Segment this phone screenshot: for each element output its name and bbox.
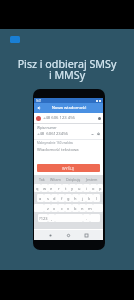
staticText: c [61, 206, 63, 211]
button[interactable]: v [65, 204, 72, 212]
staticText: Nowa wiadomość [42, 105, 96, 111]
staticText: 9:41 [36, 99, 42, 103]
staticText: w [43, 186, 47, 191]
button[interactable]: Remove recipient [98, 117, 101, 120]
button[interactable]: Logo [10, 36, 20, 43]
staticText: b [74, 206, 77, 211]
button[interactable]: Back [49, 234, 52, 237]
staticText: q [36, 186, 39, 191]
staticText: h [74, 196, 77, 201]
button[interactable]: e [48, 184, 55, 192]
button[interactable]: Back [36, 105, 42, 111]
button[interactable]: u [76, 184, 83, 192]
button[interactable]: w [41, 184, 48, 192]
staticText: +48 606 123 456 [43, 115, 76, 121]
staticText: z [47, 206, 49, 211]
button[interactable]: Jestem [86, 177, 98, 182]
button[interactable]: Witam [50, 177, 61, 182]
button[interactable]: . [83, 214, 90, 222]
button[interactable]: Clear [90, 132, 95, 137]
button[interactable]: c [58, 204, 65, 212]
button[interactable]: d [51, 194, 58, 202]
staticText: a [39, 196, 42, 201]
staticText: d [53, 196, 56, 201]
staticText: j [82, 196, 84, 201]
staticText: m [88, 206, 92, 211]
staticText: . [86, 216, 88, 221]
button[interactable]: Contacts [96, 132, 101, 137]
button[interactable]: p [97, 184, 103, 192]
button[interactable]: x [51, 204, 58, 212]
staticText: r [58, 186, 60, 191]
staticText: Wiadomość tekstowa [37, 147, 79, 153]
button[interactable]: h [72, 194, 79, 202]
staticText: Maksymalnie 160 znaków [37, 141, 73, 145]
button[interactable]: t [62, 184, 69, 192]
button[interactable]: z [44, 204, 51, 212]
button[interactable]: q [34, 184, 41, 192]
button[interactable]: y [69, 184, 76, 192]
staticText: x [53, 206, 56, 211]
button[interactable]: , [48, 214, 55, 222]
staticText: l [96, 196, 98, 201]
button[interactable]: s [44, 194, 51, 202]
button[interactable]: Home [67, 234, 70, 237]
staticText: WYŚLIJ [62, 166, 75, 171]
button[interactable]: f [58, 194, 65, 202]
staticText: o [92, 186, 95, 191]
staticText: ?123 [39, 216, 48, 221]
button[interactable]: l [93, 194, 100, 202]
staticText: g [67, 196, 70, 201]
staticText: e [50, 186, 53, 191]
button[interactable]: o [90, 184, 97, 192]
staticText: s [47, 196, 49, 201]
staticText: +48 606123456 [37, 131, 68, 137]
staticText: t [65, 186, 67, 191]
button[interactable]: b [72, 204, 79, 212]
staticText: v [67, 206, 70, 211]
button[interactable]: j [79, 194, 86, 202]
button[interactable]: a [37, 194, 44, 202]
button[interactable]: Recents [85, 234, 88, 237]
button[interactable]: Dziękuję [66, 177, 81, 182]
staticText: f [61, 196, 63, 201]
staticText: y [71, 186, 74, 191]
button[interactable]: g [65, 194, 72, 202]
button[interactable]: ?123 [38, 214, 48, 222]
staticText: Wpisz numer [37, 126, 57, 130]
button[interactable]: r [55, 184, 62, 192]
staticText: , [51, 216, 53, 221]
button[interactable]: n [79, 204, 86, 212]
staticText: u [78, 186, 81, 191]
button[interactable]: k [86, 194, 93, 202]
button[interactable]: Tak [39, 177, 45, 182]
staticText: n [81, 206, 84, 211]
button[interactable]: WYŚLIJ [37, 164, 100, 172]
button[interactable]: m [86, 204, 93, 212]
staticText: i [86, 186, 88, 191]
staticText: p [99, 186, 102, 191]
staticText: k [88, 196, 91, 201]
button[interactable]: i [83, 184, 90, 192]
staticText: Pisz i odbieraj SMSy i MMSy [0, 57, 134, 82]
